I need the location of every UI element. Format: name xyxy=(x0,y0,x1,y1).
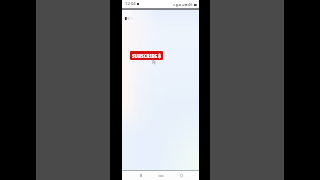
button[interactable]: Home xyxy=(156,171,166,180)
staticText: SUBSCRIBE xyxy=(132,53,158,59)
staticText: 12:04 xyxy=(125,1,136,7)
button[interactable]: SUBSCRIBE xyxy=(130,51,163,60)
staticText: 46 xyxy=(188,2,193,7)
button[interactable]: Back xyxy=(176,171,186,180)
button[interactable]: Recents xyxy=(136,171,146,180)
button[interactable]: App icon xyxy=(125,17,134,20)
